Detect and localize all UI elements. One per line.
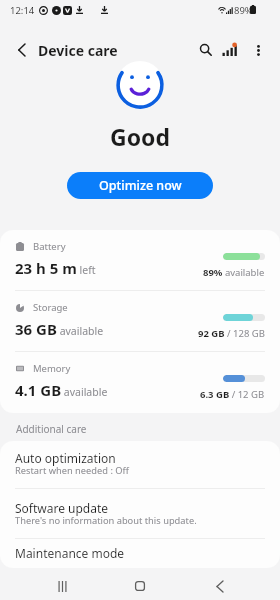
button[interactable]: More options (242, 34, 274, 66)
staticText: Auto optimization (15, 450, 116, 466)
staticText: Restart when needed : Off (15, 464, 130, 477)
button[interactable]: Software update (0, 498, 280, 544)
staticText: Device care (38, 41, 118, 60)
button[interactable]: Memory (0, 352, 280, 413)
staticText: 89% (234, 4, 253, 17)
button[interactable]: Maintenance mode (0, 543, 280, 568)
button[interactable]: Battery (0, 230, 280, 291)
button[interactable]: Recent apps (42, 572, 82, 600)
staticText: Good (0, 121, 280, 152)
staticText: 92 GB / 128 GB (198, 327, 265, 340)
staticText: 12:14 (10, 4, 35, 17)
staticText: Memory (33, 362, 71, 375)
staticText: Optimize now (99, 177, 182, 194)
button[interactable]: Optimize now (67, 172, 213, 199)
staticText: 36 GB available (15, 319, 104, 339)
button[interactable]: Auto optimization (0, 448, 280, 494)
staticText: 23 h 5 m left (15, 258, 96, 278)
button[interactable]: Back (200, 572, 240, 600)
staticText: Battery (33, 240, 66, 253)
button[interactable]: Search (190, 34, 222, 66)
button[interactable]: Usage statistics (214, 34, 246, 66)
staticText: There's no information about this update… (15, 514, 197, 527)
staticText: 89% available (203, 266, 265, 279)
button[interactable]: Navigate up (5, 34, 37, 66)
staticText: Additional care (16, 422, 87, 436)
staticText: 4.1 GB available (15, 380, 108, 400)
button[interactable]: Home (120, 572, 160, 600)
staticText: Storage (33, 301, 68, 314)
staticText: Software update (15, 500, 109, 516)
staticText: 6.3 GB / 12 GB (200, 388, 265, 401)
button[interactable]: Storage (0, 291, 280, 352)
staticText: Maintenance mode (15, 545, 125, 561)
